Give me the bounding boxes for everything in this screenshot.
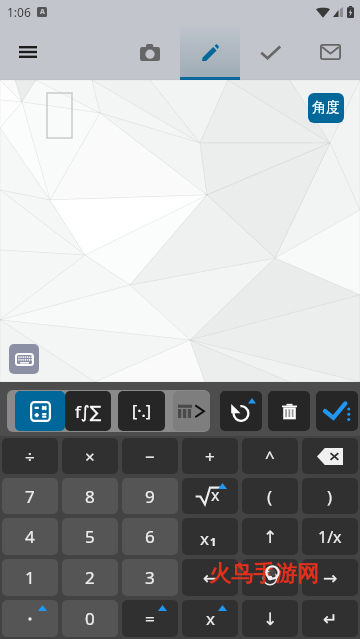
button[interactable]: =	[122, 600, 178, 637]
button[interactable]: 7	[2, 478, 58, 514]
staticText: 角度	[312, 99, 340, 117]
button[interactable]: 0	[62, 600, 118, 637]
button[interactable]: Table	[173, 391, 210, 431]
button[interactable]: 角度	[308, 93, 344, 123]
button[interactable]: ↵	[302, 600, 358, 637]
staticText: (	[267, 485, 273, 508]
staticText: )	[327, 485, 333, 508]
button[interactable]: −	[122, 438, 178, 474]
button[interactable]: ↓	[242, 600, 298, 637]
button[interactable]: Functions	[65, 391, 111, 431]
button[interactable]: x	[182, 518, 238, 555]
staticText: 4	[25, 525, 35, 548]
button[interactable]: 1	[2, 559, 58, 596]
staticText: −	[145, 445, 155, 468]
button[interactable]: ↑	[242, 518, 298, 555]
staticText: x	[206, 607, 215, 630]
button[interactable]: Matrix	[118, 391, 165, 431]
button[interactable]: Camera	[120, 24, 180, 80]
staticText: 0	[85, 607, 95, 630]
button[interactable]: 2	[62, 559, 118, 596]
staticText: ↵	[323, 609, 338, 629]
staticText: →	[323, 568, 338, 588]
staticText: 1/x	[318, 526, 342, 548]
button[interactable]: 6	[122, 518, 178, 555]
button[interactable]: Mail	[300, 24, 360, 80]
button[interactable]: (	[242, 478, 298, 514]
button[interactable]: x	[182, 478, 238, 514]
staticText: 1:06	[7, 4, 31, 20]
staticText: ↓	[263, 609, 278, 629]
staticText: x	[200, 527, 209, 549]
staticText: ↑	[263, 527, 278, 547]
button[interactable]	[242, 559, 298, 596]
button[interactable]: 3	[122, 559, 178, 596]
button[interactable]: 5	[62, 518, 118, 555]
staticText: A	[40, 7, 45, 17]
button[interactable]: x	[182, 600, 238, 637]
staticText: 8	[85, 485, 95, 508]
staticText: 7	[25, 485, 35, 508]
staticText: 6	[145, 525, 155, 548]
staticText: ^	[265, 445, 275, 468]
staticText: ÷	[25, 445, 35, 468]
staticText: 5	[85, 525, 95, 548]
staticText: 火鸟手游网	[209, 560, 319, 588]
staticText: +	[205, 445, 215, 468]
staticText: ←	[203, 568, 218, 588]
button[interactable]: ×	[62, 438, 118, 474]
staticText: =	[145, 607, 155, 630]
staticText: [·.]	[132, 400, 152, 422]
button[interactable]: ^	[242, 438, 298, 474]
staticText: 3	[145, 566, 155, 589]
button[interactable]: Delete	[268, 391, 310, 431]
button[interactable]: Validate	[240, 24, 300, 80]
button[interactable]: 4	[2, 518, 58, 555]
button[interactable]: Undo	[220, 391, 262, 431]
button[interactable]: Write	[180, 24, 240, 80]
button[interactable]: ←	[182, 559, 238, 596]
button[interactable]: Calculator	[15, 391, 65, 431]
staticText: 1	[210, 534, 217, 549]
button[interactable]: Keyboard	[9, 344, 39, 374]
button[interactable]	[302, 438, 358, 474]
staticText: 1	[25, 566, 35, 589]
staticText: f∫∑	[75, 400, 102, 423]
staticText: 9	[145, 485, 155, 508]
staticText: 2	[85, 566, 95, 589]
button[interactable]: 9	[122, 478, 178, 514]
button[interactable]: ÷	[2, 438, 58, 474]
button[interactable]: →	[302, 559, 358, 596]
staticText: ×	[85, 445, 95, 468]
button[interactable]: 1/x	[302, 518, 358, 555]
button[interactable]: )	[302, 478, 358, 514]
button[interactable]: Menu	[4, 28, 52, 76]
button[interactable]: Confirm	[316, 391, 358, 431]
button[interactable]	[2, 600, 58, 637]
button[interactable]: 8	[62, 478, 118, 514]
staticText: x	[211, 484, 220, 506]
button[interactable]: +	[182, 438, 238, 474]
